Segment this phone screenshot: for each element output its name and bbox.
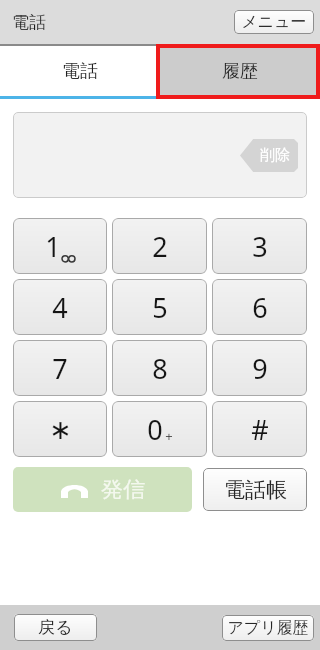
button[interactable]: 電話 bbox=[0, 44, 160, 99]
button[interactable]: 3 bbox=[212, 218, 307, 274]
staticText: 1 bbox=[45, 228, 61, 265]
button[interactable]: 8 bbox=[112, 340, 207, 396]
staticText: 電話帳 bbox=[224, 477, 287, 503]
button[interactable]: 2 bbox=[112, 218, 207, 274]
staticText: 7 bbox=[52, 350, 68, 387]
button[interactable]: # bbox=[212, 401, 307, 457]
staticText: 8 bbox=[152, 350, 168, 387]
staticText: 電話 bbox=[62, 60, 98, 83]
staticText: # bbox=[251, 411, 269, 448]
staticText: 電話 bbox=[12, 12, 46, 33]
staticText: 3 bbox=[252, 228, 268, 265]
button[interactable]: アプリ履歴 bbox=[222, 615, 314, 641]
staticText: 4 bbox=[52, 289, 68, 326]
staticText: + bbox=[165, 427, 173, 445]
button[interactable]: 戻る bbox=[14, 614, 97, 641]
staticText: 削除 bbox=[260, 146, 290, 165]
staticText: アプリ履歴 bbox=[227, 618, 309, 638]
button[interactable]: 4 bbox=[13, 279, 107, 335]
staticText: メニュー bbox=[241, 12, 307, 32]
button[interactable]: 削除 bbox=[240, 139, 298, 172]
button[interactable]: 9 bbox=[212, 340, 307, 396]
staticText: 6 bbox=[252, 289, 268, 326]
staticText: 0 bbox=[147, 411, 163, 448]
button[interactable]: 電話帳 bbox=[203, 468, 307, 511]
staticText: 9 bbox=[252, 350, 268, 387]
button[interactable]: メニュー bbox=[234, 10, 314, 34]
staticText: 5 bbox=[152, 289, 168, 326]
staticText: 戻る bbox=[38, 617, 73, 638]
button[interactable]: 削除 bbox=[13, 112, 307, 198]
staticText: 発信 bbox=[101, 476, 145, 504]
button[interactable]: 1 bbox=[13, 218, 107, 274]
button[interactable]: ∗ bbox=[13, 401, 107, 457]
staticText: 履歴 bbox=[222, 60, 258, 83]
staticText: ∗ bbox=[49, 414, 72, 445]
button[interactable]: 0 bbox=[112, 401, 207, 457]
button[interactable]: 7 bbox=[13, 340, 107, 396]
button[interactable]: 履歴 bbox=[160, 44, 320, 99]
button[interactable]: 5 bbox=[112, 279, 207, 335]
button[interactable]: 6 bbox=[212, 279, 307, 335]
button[interactable]: 発信 bbox=[13, 467, 192, 512]
staticText: 2 bbox=[152, 228, 168, 265]
